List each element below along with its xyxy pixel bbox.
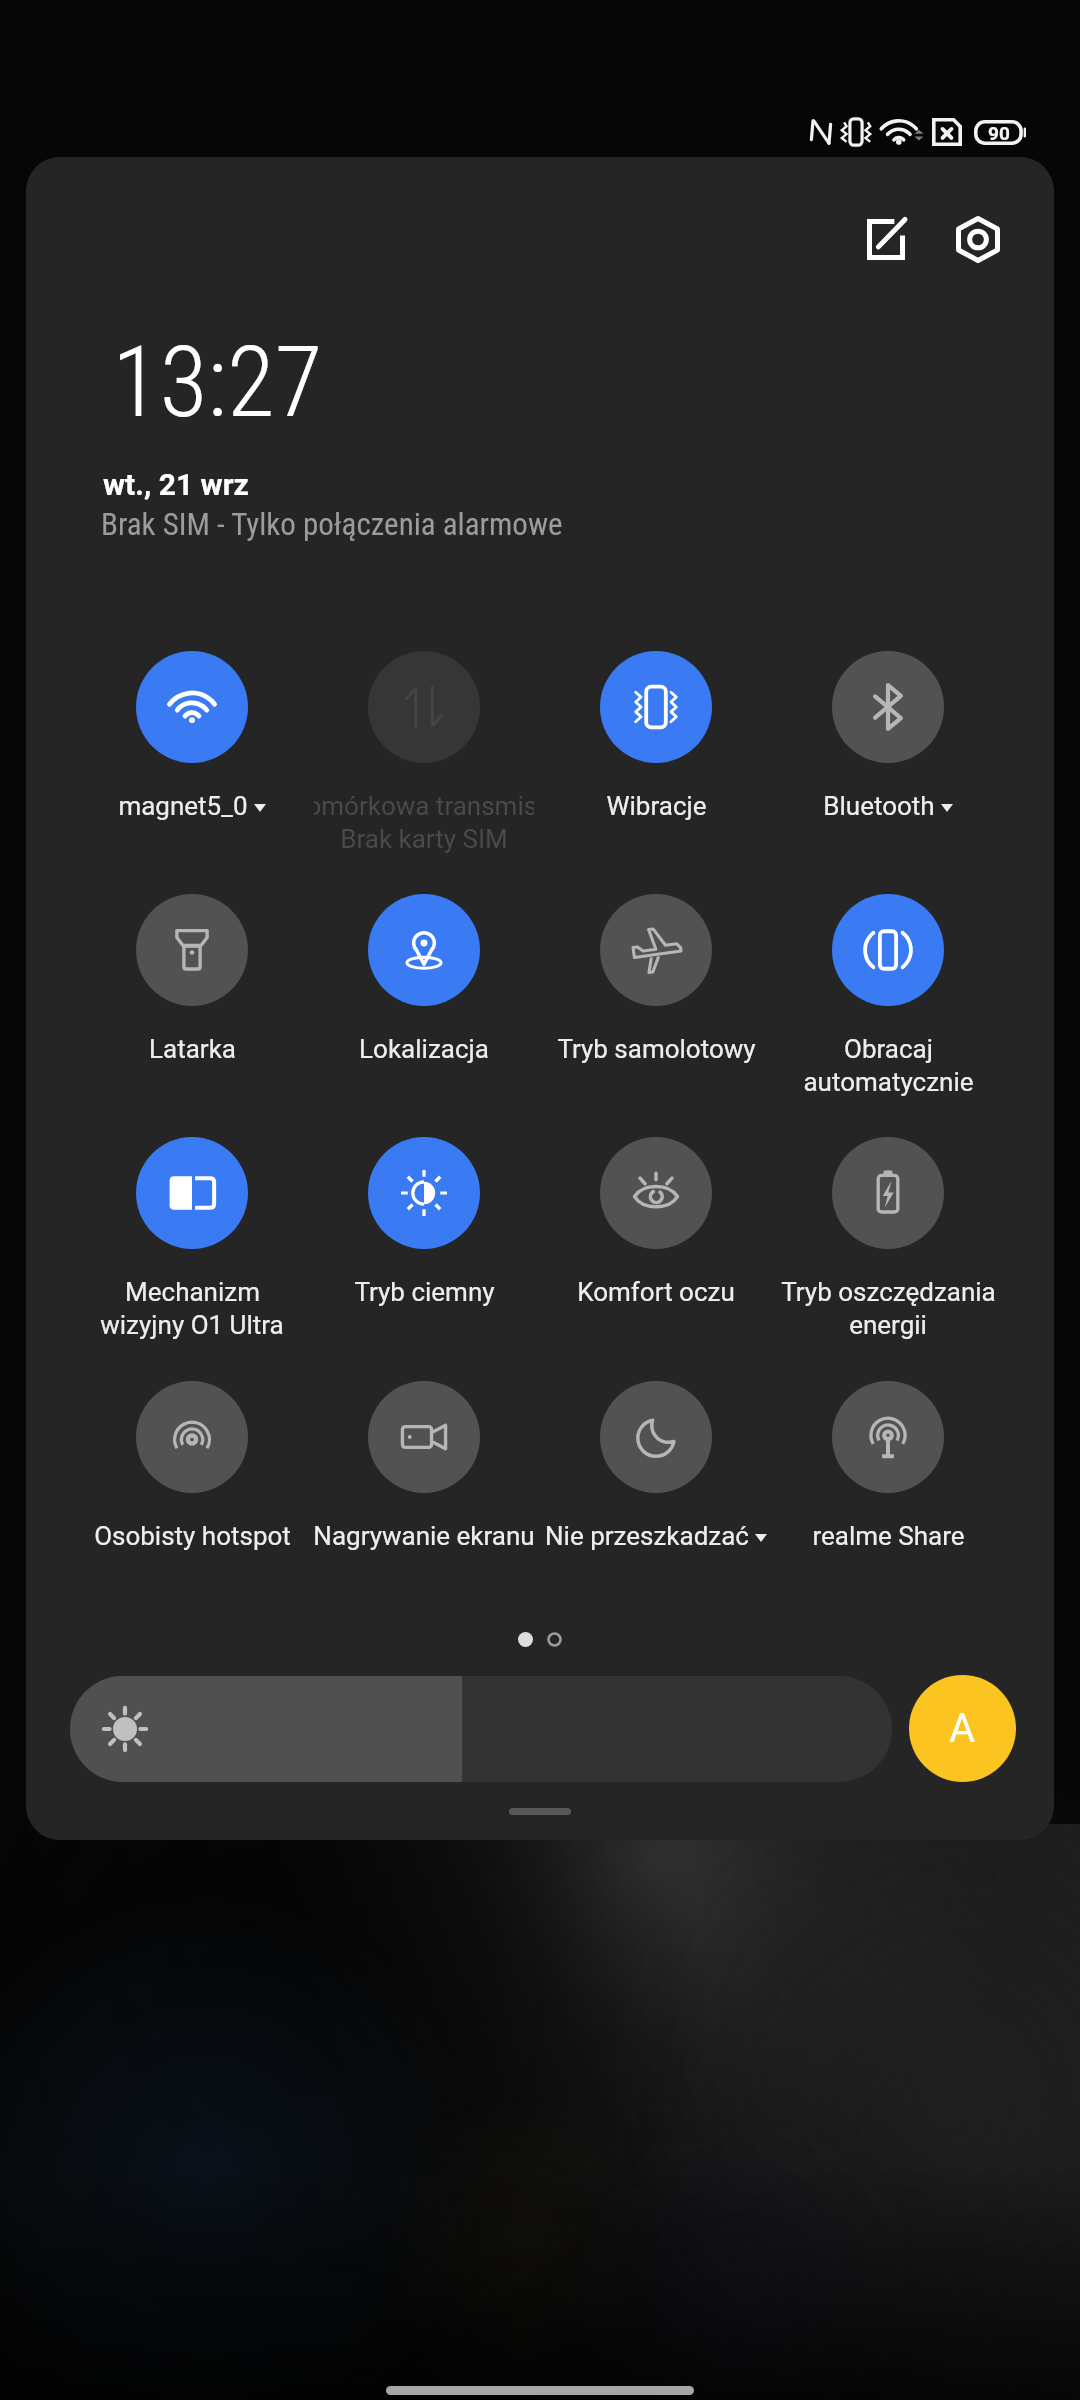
staticText: Tryb ciemny [354,1277,495,1307]
staticText: Obracaj [844,1034,933,1064]
staticText: Brak karty SIM [340,824,508,854]
staticText: Latarka [149,1034,236,1064]
button[interactable]: Mechanizm wizyjny O1 Ultra [76,1123,308,1323]
button[interactable]: realme Share [772,1367,1004,1567]
staticText: A [949,1705,976,1752]
staticText: Komfort oczu [577,1277,735,1307]
button[interactable]: Osobisty hotspot [76,1367,308,1567]
button[interactable]: Nie przeszkadzać [540,1367,772,1567]
button[interactable]: magnet5_0 [76,637,308,837]
staticText: Nie przeszkadzać [545,1521,749,1551]
staticText: Nagrywanie ekranu [313,1521,535,1551]
button[interactable]: Settings [938,199,1018,279]
button[interactable]: Komórkowa transmisja Brak karty SIM [308,637,540,837]
staticText: Komórkowa transmisja [290,791,558,821]
staticText: Osobisty hotspot [94,1521,291,1551]
staticText: Mechanizm [125,1277,260,1307]
staticText: Wibracje [606,791,707,821]
staticText: energii [849,1310,927,1340]
staticText: wizyjny O1 Ultra [100,1310,284,1340]
button[interactable]: Tryb ciemny [308,1123,540,1323]
staticText: automatycznie [803,1067,974,1097]
button[interactable]: Tryb oszczędzania energii [772,1123,1004,1323]
staticText: Lokalizacja [359,1034,489,1064]
staticText: Tryb oszczędzania [781,1277,996,1307]
button[interactable]: Nagrywanie ekranu [308,1367,540,1567]
staticText: Brak SIM - Tylko połączenia alarmowe [101,506,563,542]
button[interactable]: Brightness [70,1676,892,1782]
button[interactable]: Edit [846,199,926,279]
button[interactable]: Bluetooth [772,637,1004,837]
staticText: realme Share [812,1521,965,1551]
staticText: 13:27 [112,325,323,440]
button[interactable]: Auto brightness [909,1675,1016,1782]
staticText: Bluetooth [823,791,935,821]
button[interactable]: Tryb samolotowy [540,880,772,1080]
staticText: magnet5_0 [118,791,248,821]
button[interactable]: Wibracje [540,637,772,837]
button[interactable]: Obracaj automatycznie [772,880,1004,1080]
button[interactable]: Latarka [76,880,308,1080]
button[interactable]: Komfort oczu [540,1123,772,1323]
staticText: Tryb samolotowy [557,1034,756,1064]
staticText: wt., 21 wrz [103,467,249,502]
staticText: 90 [988,122,1010,144]
button[interactable]: Lokalizacja [308,880,540,1080]
